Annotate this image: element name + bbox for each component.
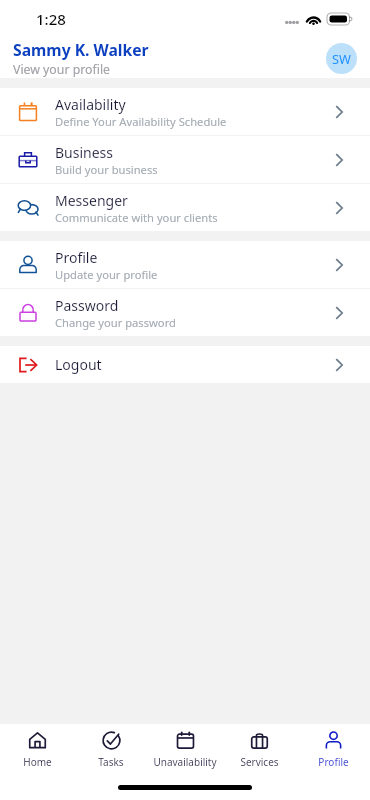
staticText: Sammy K. Walker	[13, 39, 149, 60]
staticText: Services	[240, 755, 279, 769]
button[interactable]: Profile	[296, 727, 370, 772]
button[interactable]: Profile	[0, 241, 370, 288]
button[interactable]: Logout	[0, 346, 370, 383]
staticText: Password	[55, 296, 119, 315]
button[interactable]: Profile avatar	[326, 43, 357, 74]
button[interactable]: Tasks	[74, 727, 148, 772]
button[interactable]: Services	[222, 727, 296, 772]
staticText: Build your business	[55, 162, 158, 177]
button[interactable]: Messenger	[0, 184, 370, 231]
staticText: Communicate with your clients	[55, 210, 218, 225]
staticText: Availability	[55, 95, 126, 114]
staticText: 1:28	[36, 9, 66, 29]
button[interactable]: Password	[0, 289, 370, 336]
staticText: View your profile	[13, 61, 111, 78]
button[interactable]: Home	[0, 727, 74, 772]
staticText: Tasks	[98, 755, 124, 769]
button[interactable]: Availability	[0, 88, 370, 135]
staticText: Define Your Availability Schedule	[55, 114, 227, 129]
staticText: Change your password	[55, 315, 176, 330]
button[interactable]: Business	[0, 136, 370, 183]
staticText: Messenger	[55, 191, 128, 210]
button[interactable]: Unavailability	[148, 727, 222, 772]
staticText: Profile	[318, 755, 349, 769]
staticText: Logout	[55, 355, 102, 374]
staticText: Unavailability	[153, 755, 217, 769]
staticText: Update your profile	[55, 267, 158, 282]
staticText: Profile	[55, 248, 98, 267]
staticText: SW	[332, 50, 351, 67]
staticText: Business	[55, 143, 114, 162]
staticText: Home	[23, 755, 52, 769]
